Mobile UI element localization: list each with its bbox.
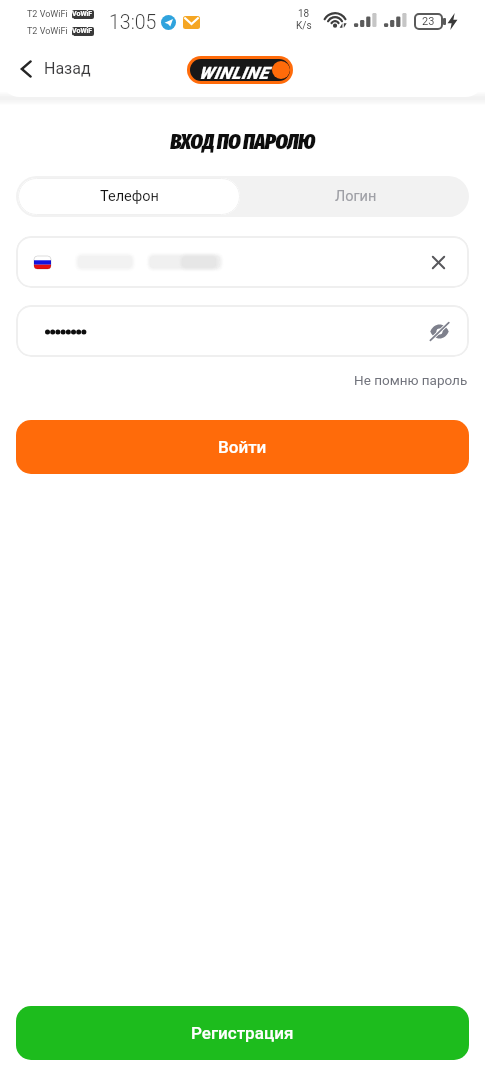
staticText: Назад xyxy=(44,59,91,78)
button[interactable]: Логин xyxy=(242,176,469,217)
staticText: VoWiFi xyxy=(72,27,94,36)
staticText: Телефон xyxy=(100,188,159,205)
staticText: Регистрация xyxy=(191,1023,294,1043)
button[interactable]: Назад xyxy=(14,54,97,83)
staticText: 13:05 xyxy=(109,11,157,34)
button[interactable]: Показать пароль xyxy=(423,315,455,347)
staticText: K/s xyxy=(296,20,312,32)
staticText: Логин xyxy=(335,188,377,205)
staticText: T2 VoWiFi xyxy=(27,9,68,20)
button[interactable]: Телефон xyxy=(18,178,240,215)
staticText: VoWiFi xyxy=(72,10,94,19)
button[interactable]: Очистить xyxy=(16,236,469,288)
staticText: WINLINE xyxy=(199,63,269,81)
staticText: 18 xyxy=(298,8,310,20)
button[interactable]: Очистить xyxy=(422,246,454,278)
button[interactable]: Регистрация xyxy=(16,1006,469,1060)
staticText: ВХОД ПО ПАРОЛЮ xyxy=(0,128,485,154)
staticText: Войти xyxy=(218,437,267,457)
button[interactable]: Не помню пароль xyxy=(354,372,468,388)
staticText: 23 xyxy=(422,15,435,28)
button[interactable]: Показать пароль xyxy=(16,305,469,357)
button[interactable]: Войти xyxy=(16,420,469,474)
staticText: T2 VoWiFi xyxy=(27,26,68,37)
